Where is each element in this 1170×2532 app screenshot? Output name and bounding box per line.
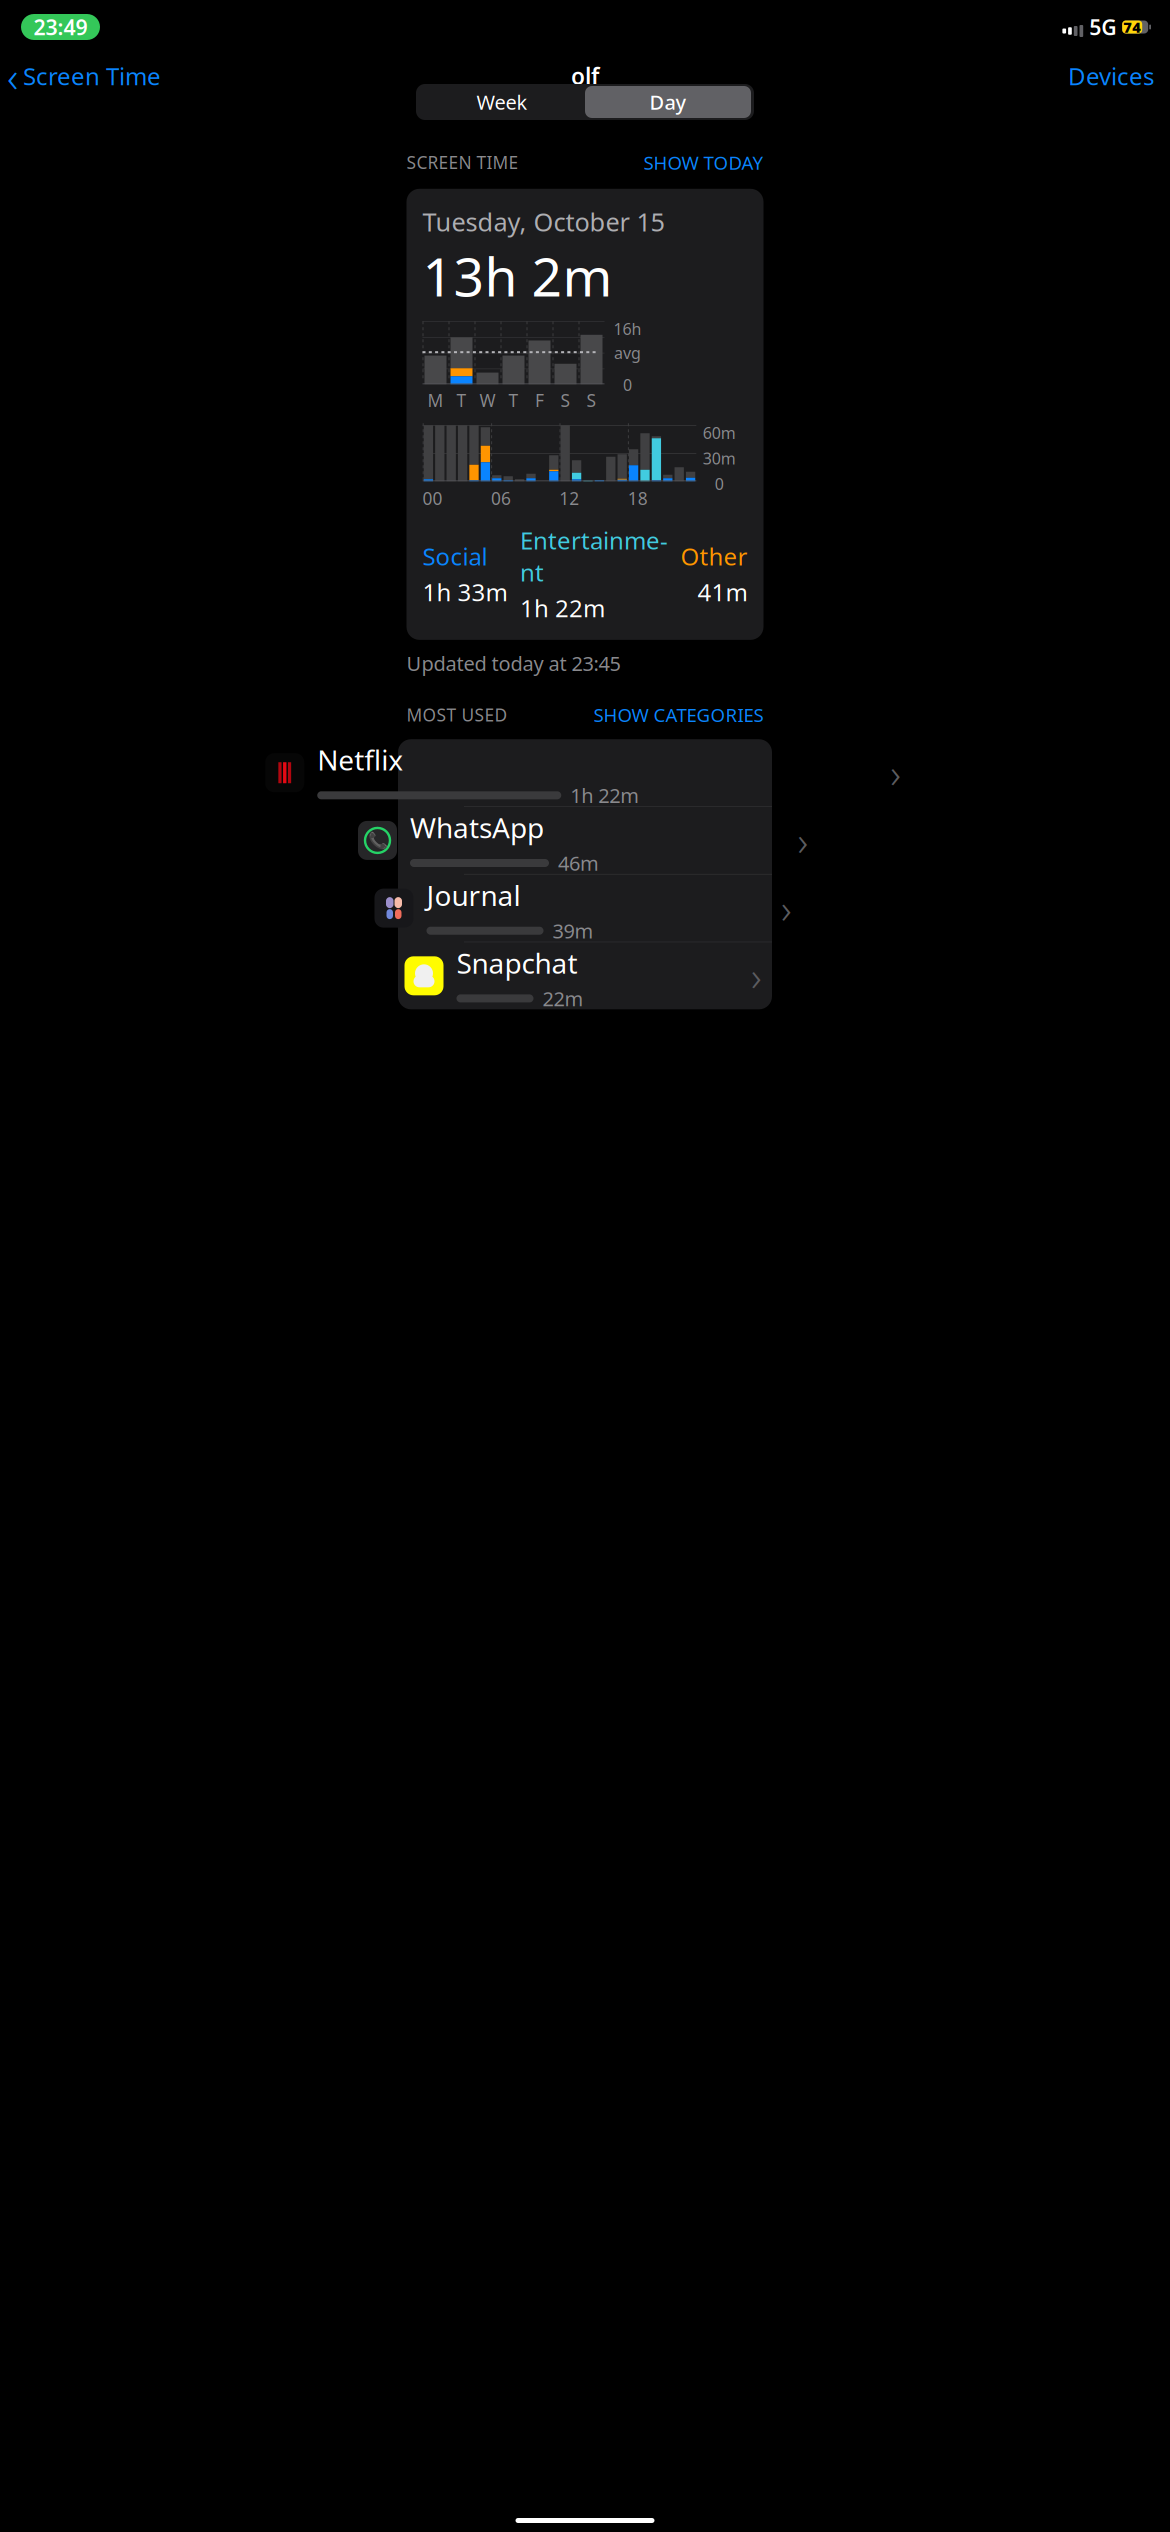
staticText: 1h 22m xyxy=(570,782,639,809)
staticText: 00 xyxy=(422,487,442,510)
staticText: 46m xyxy=(558,850,599,876)
staticText: Tuesday, October 15 xyxy=(422,205,664,238)
staticText: T xyxy=(508,389,518,412)
staticText: › xyxy=(781,882,792,935)
staticText: Updated today at 23:45 xyxy=(406,650,620,676)
staticText: Netflix xyxy=(317,741,403,778)
staticText: 0 xyxy=(715,473,724,494)
staticText: T xyxy=(456,389,466,412)
staticText: Social xyxy=(422,540,487,572)
staticText: 22m xyxy=(542,985,583,1012)
staticText: SHOW TODAY xyxy=(643,150,763,175)
staticText: SHOW CATEGORIES xyxy=(593,702,763,727)
staticText: 30m xyxy=(703,448,736,469)
staticText: S xyxy=(560,389,570,412)
button[interactable]: SHOW TODAY xyxy=(643,150,763,175)
staticText: Journal xyxy=(426,876,520,914)
staticText: 06 xyxy=(491,487,511,510)
button[interactable]: SHOW CATEGORIES xyxy=(593,702,763,727)
staticText: 18 xyxy=(628,487,648,510)
staticText: Devices xyxy=(1068,60,1154,92)
staticText: 39m xyxy=(552,917,593,944)
button[interactable]: 📞 xyxy=(362,807,808,874)
staticText: 5G xyxy=(1089,13,1116,41)
button[interactable]: ‹ xyxy=(0,55,161,97)
staticText: 23:49 xyxy=(33,13,87,41)
staticText: 0 xyxy=(623,374,632,395)
button[interactable]: Journal xyxy=(373,875,797,942)
button[interactable]: Snapchat xyxy=(393,942,777,1009)
staticText: 74 xyxy=(1123,17,1141,37)
staticText: avg xyxy=(614,342,641,363)
staticText: Screen Time xyxy=(23,60,161,92)
staticText: M xyxy=(427,389,443,412)
staticText: W xyxy=(479,389,495,412)
staticText: 16h xyxy=(613,318,641,339)
staticText: S xyxy=(586,389,596,412)
staticText: Entertainment xyxy=(520,524,668,588)
staticText: 1h 22m xyxy=(520,592,605,624)
staticText: olf xyxy=(571,61,599,91)
staticText: Day xyxy=(649,89,686,115)
staticText: SCREEN TIME xyxy=(406,151,518,174)
button[interactable]: Day xyxy=(585,86,751,118)
button[interactable]: Week xyxy=(419,86,585,118)
staticText: 60m xyxy=(703,422,736,443)
staticText: WhatsApp xyxy=(410,809,544,846)
staticText: 📞 xyxy=(367,831,387,850)
staticText: ‹ xyxy=(7,48,18,104)
button[interactable]: Netflix xyxy=(309,739,860,806)
staticText: › xyxy=(751,949,762,1002)
staticText: F xyxy=(535,389,544,412)
staticText: 1h 33m xyxy=(422,576,507,608)
button[interactable]: Devices xyxy=(1052,55,1170,97)
staticText: Snapchat xyxy=(456,944,577,981)
staticText: 13h 2m xyxy=(422,240,612,311)
staticText: › xyxy=(797,814,808,867)
staticText: MOST USED xyxy=(406,703,507,726)
staticText: Week xyxy=(476,89,527,115)
staticText: › xyxy=(890,746,901,799)
staticText: Other xyxy=(680,540,747,572)
staticText: 12 xyxy=(559,487,579,510)
staticText: 41m xyxy=(697,576,747,608)
